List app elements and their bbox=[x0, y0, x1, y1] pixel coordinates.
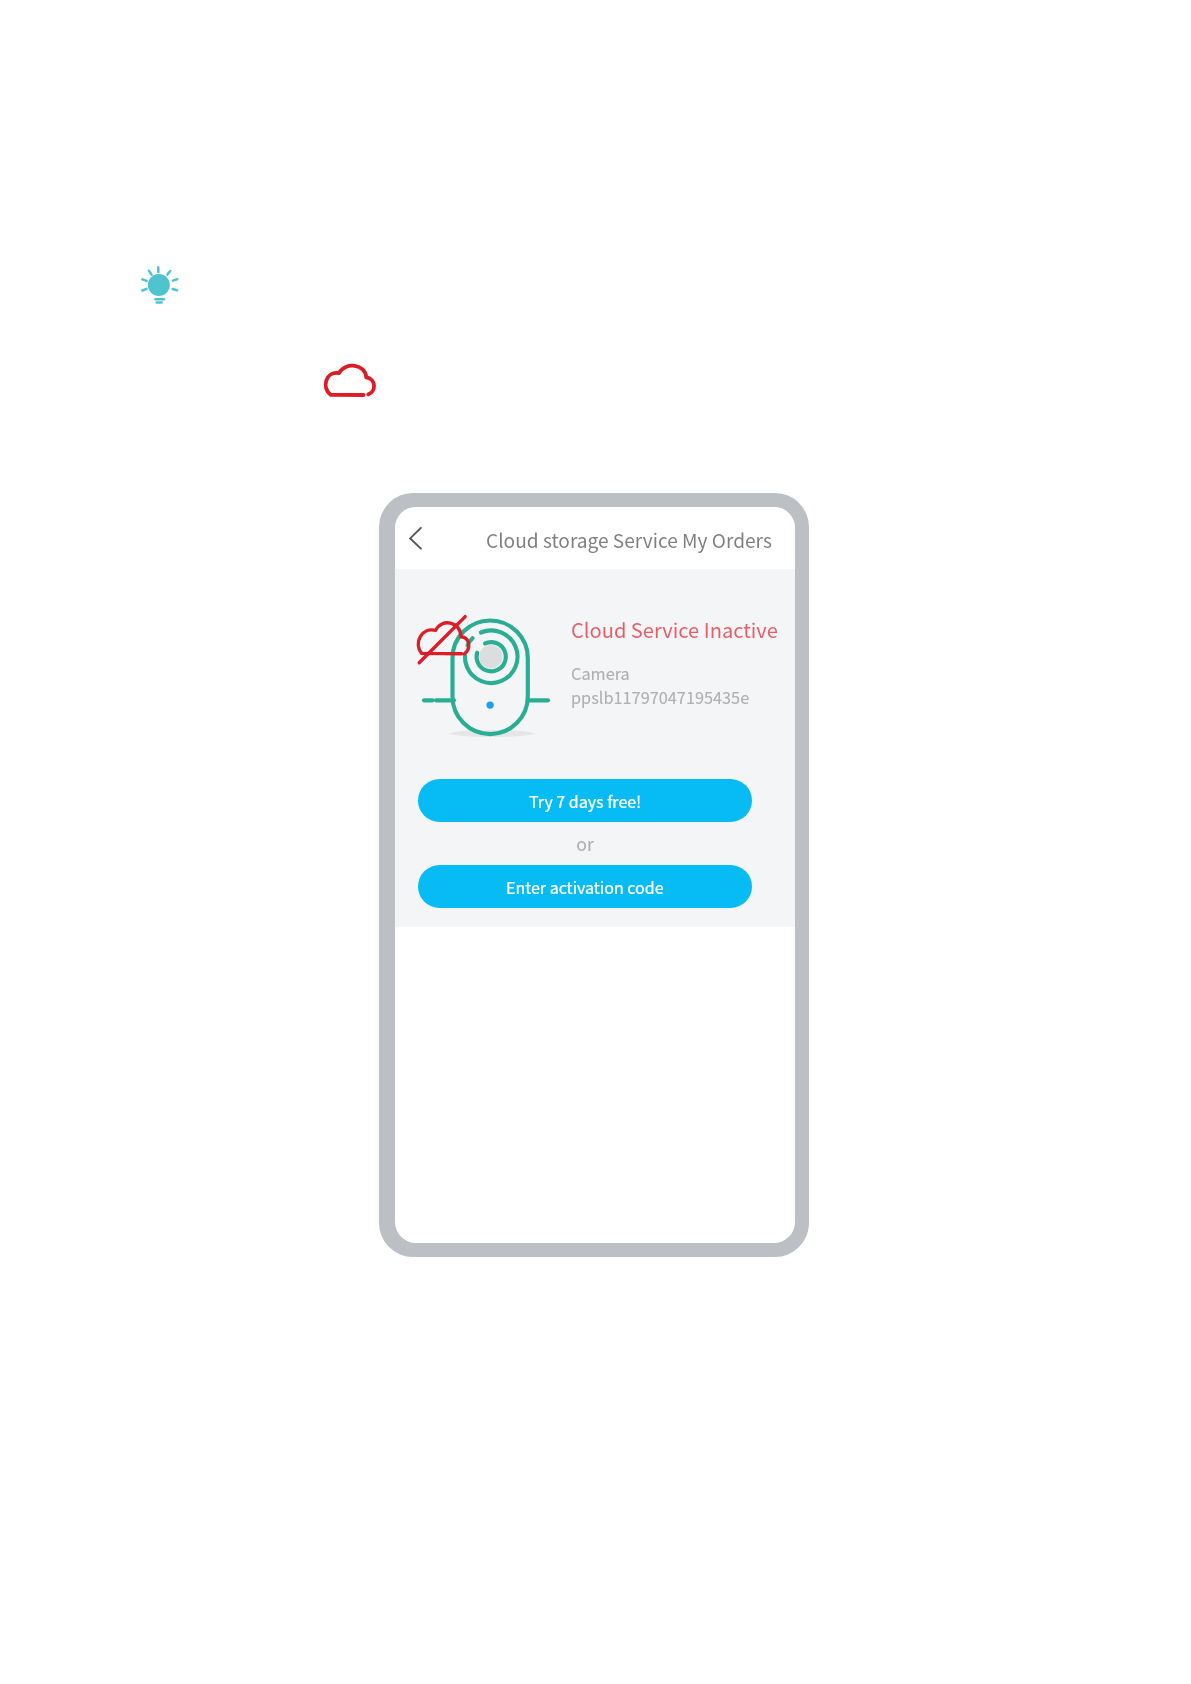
staticText: Camera ppslb11797047195435e bbox=[571, 661, 750, 709]
staticText: Cloud Service Inactive bbox=[571, 615, 778, 644]
staticText: Enter activation code bbox=[506, 875, 664, 898]
button[interactable]: Back bbox=[395, 514, 431, 556]
staticText: Cloud storage Service My Orders bbox=[486, 526, 772, 554]
button[interactable]: Try 7 days free! bbox=[418, 779, 752, 822]
staticText: Try 7 days free! bbox=[529, 789, 642, 812]
button[interactable]: Enter activation code bbox=[418, 865, 752, 908]
staticText: or bbox=[418, 831, 752, 856]
